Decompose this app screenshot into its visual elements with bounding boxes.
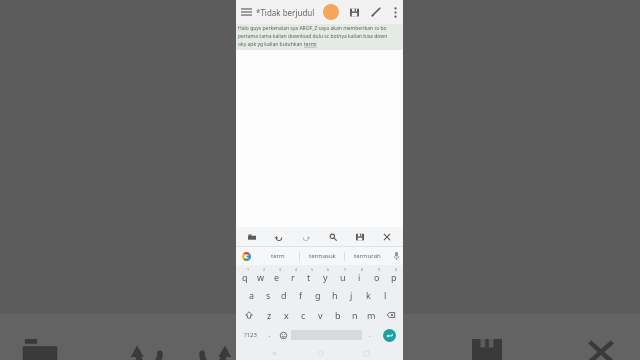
staticText: 9 [378, 267, 381, 272]
button[interactable]: Search [322, 227, 344, 246]
staticText: f [299, 289, 303, 301]
button[interactable]: h [326, 285, 343, 305]
button[interactable]: Shift [237, 305, 260, 325]
staticText: 5 [311, 267, 314, 272]
button[interactable]: d [276, 285, 292, 305]
staticText: 8 [361, 267, 364, 272]
button[interactable]: 1 [237, 265, 253, 285]
button[interactable]: n [346, 305, 363, 325]
staticText: 6 [327, 267, 330, 272]
staticText: w [257, 271, 265, 283]
button[interactable]: Edit [365, 0, 387, 24]
staticText: . [369, 331, 371, 339]
staticText: r [291, 271, 295, 283]
staticText: 0 [395, 267, 398, 272]
staticText: termurah [354, 252, 381, 260]
staticText: termi [304, 41, 317, 48]
button[interactable]: 0 [385, 265, 402, 285]
staticText: m [367, 309, 376, 321]
button[interactable]: Google [236, 247, 256, 265]
button[interactable]: Comma [263, 325, 276, 345]
button[interactable]: 7 [334, 265, 351, 285]
button[interactable]: Save [343, 0, 365, 24]
staticText: Halo guys perkenalan sya AROF_Z saya aka… [238, 25, 387, 32]
staticText: 3 [279, 267, 282, 272]
button[interactable]: 6 [317, 265, 334, 285]
staticText: n [352, 309, 358, 321]
button[interactable]: s [260, 285, 276, 305]
staticText: oky apk yg kalian butuhkan [238, 41, 304, 48]
staticText: ?123 [244, 331, 257, 339]
staticText: l [384, 289, 387, 301]
staticText: x [284, 309, 289, 321]
staticText: 4 [295, 267, 298, 272]
staticText: b [335, 309, 341, 321]
button[interactable]: 8 [351, 265, 368, 285]
staticText: a [249, 289, 255, 301]
button[interactable]: 5 [301, 265, 317, 285]
button[interactable]: g [309, 285, 326, 305]
button[interactable]: f [292, 285, 309, 305]
button[interactable]: Redo [295, 227, 317, 246]
button[interactable]: Account [323, 4, 339, 20]
button[interactable]: More options [387, 0, 403, 24]
button[interactable]: v [312, 305, 329, 325]
button[interactable]: 3 [269, 265, 285, 285]
button[interactable]: m [363, 305, 380, 325]
staticText: termasuk [309, 252, 336, 260]
button[interactable]: termasuk [300, 247, 344, 265]
button[interactable]: Close [376, 227, 398, 246]
button[interactable]: Folder [241, 227, 263, 246]
button[interactable]: x [278, 305, 295, 325]
button[interactable]: Save [349, 227, 371, 246]
staticText: k [366, 289, 371, 301]
staticText: u [340, 271, 346, 283]
button[interactable]: k [360, 285, 377, 305]
staticText: h [332, 289, 338, 301]
staticText: c [301, 309, 306, 321]
button[interactable]: b [329, 305, 346, 325]
button[interactable]: Menu [236, 0, 256, 24]
button[interactable]: 9 [368, 265, 385, 285]
button[interactable]: Back [263, 347, 283, 360]
staticText: y [323, 271, 328, 283]
staticText: q [242, 271, 248, 283]
staticText: *Tidak berjudul [256, 7, 315, 18]
staticText: term [271, 252, 285, 260]
button[interactable]: z [260, 305, 278, 325]
button[interactable]: Backspace [380, 305, 402, 325]
button[interactable]: Voice input [389, 247, 403, 265]
button[interactable]: term [256, 247, 299, 265]
staticText: , [269, 331, 271, 339]
staticText: d [281, 289, 287, 301]
staticText: j [350, 289, 353, 301]
staticText: t [307, 271, 311, 283]
staticText: 2 [263, 267, 266, 272]
button[interactable]: l [377, 285, 394, 305]
staticText: z [267, 309, 272, 321]
staticText: p [391, 271, 397, 283]
staticText: e [274, 271, 280, 283]
staticText: v [318, 309, 323, 321]
button[interactable]: ?123 [237, 325, 263, 345]
button[interactable]: 4 [285, 265, 301, 285]
button[interactable]: 2 [253, 265, 269, 285]
button[interactable]: j [343, 285, 360, 305]
button[interactable]: Undo [268, 227, 290, 246]
staticText: o [374, 271, 380, 283]
staticText: 7 [344, 267, 347, 272]
staticText: g [315, 289, 321, 301]
button[interactable]: termurah [345, 247, 389, 265]
button[interactable]: Emoji [276, 325, 291, 345]
staticText: 1 [247, 267, 250, 272]
staticText: pertama tama kalian download dulu sc bot… [238, 33, 388, 40]
staticText: s [266, 289, 271, 301]
button[interactable]: a [244, 285, 260, 305]
button[interactable]: c [295, 305, 312, 325]
staticText: i [358, 271, 361, 283]
button[interactable]: Enter [383, 329, 396, 342]
